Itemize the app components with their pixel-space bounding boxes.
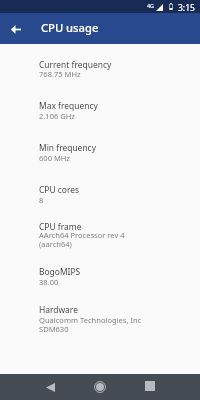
staticText: 600 MHz bbox=[39, 153, 70, 163]
staticText: BogoMIPS bbox=[39, 266, 81, 278]
staticText: 8 bbox=[39, 195, 44, 205]
staticText: 2.106 GHz bbox=[39, 111, 75, 121]
staticText: 38.00 bbox=[39, 277, 59, 287]
button[interactable]: Min frequency bbox=[0, 136, 200, 171]
button[interactable]: CPU frame bbox=[0, 215, 200, 257]
other: Mobile signal bbox=[156, 4, 163, 11]
staticText: 4G bbox=[147, 2, 155, 9]
staticText: Min frequency bbox=[39, 142, 96, 154]
staticText: CPU frame bbox=[39, 221, 82, 233]
button[interactable]: Recent apps bbox=[130, 374, 170, 400]
staticText: AArch64 Processor rev 4 bbox=[39, 230, 125, 240]
button[interactable]: BogoMIPS bbox=[0, 260, 200, 295]
staticText: Hardware bbox=[39, 304, 78, 316]
staticText: CPU usage bbox=[41, 20, 99, 35]
staticText: (aarch64) bbox=[39, 239, 72, 249]
button[interactable]: Navigate up bbox=[1, 14, 31, 44]
staticText: Current frequency bbox=[39, 59, 112, 71]
button[interactable]: Home bbox=[80, 374, 120, 400]
staticText: CPU cores bbox=[39, 184, 80, 196]
staticText: 3:15 bbox=[178, 2, 195, 14]
button[interactable]: Current frequency bbox=[0, 53, 200, 87]
staticText: Max frequency bbox=[39, 100, 98, 112]
button[interactable]: Max frequency bbox=[0, 94, 200, 129]
button[interactable]: Hardware bbox=[0, 298, 200, 341]
staticText: 768.75 MHz bbox=[39, 69, 81, 79]
staticText: Qualcomm Technologies, Inc bbox=[39, 315, 142, 325]
other: Battery bbox=[169, 3, 173, 10]
staticText: SDM630 bbox=[39, 324, 69, 334]
button[interactable]: Back bbox=[30, 374, 70, 400]
button[interactable]: CPU cores bbox=[0, 177, 200, 212]
